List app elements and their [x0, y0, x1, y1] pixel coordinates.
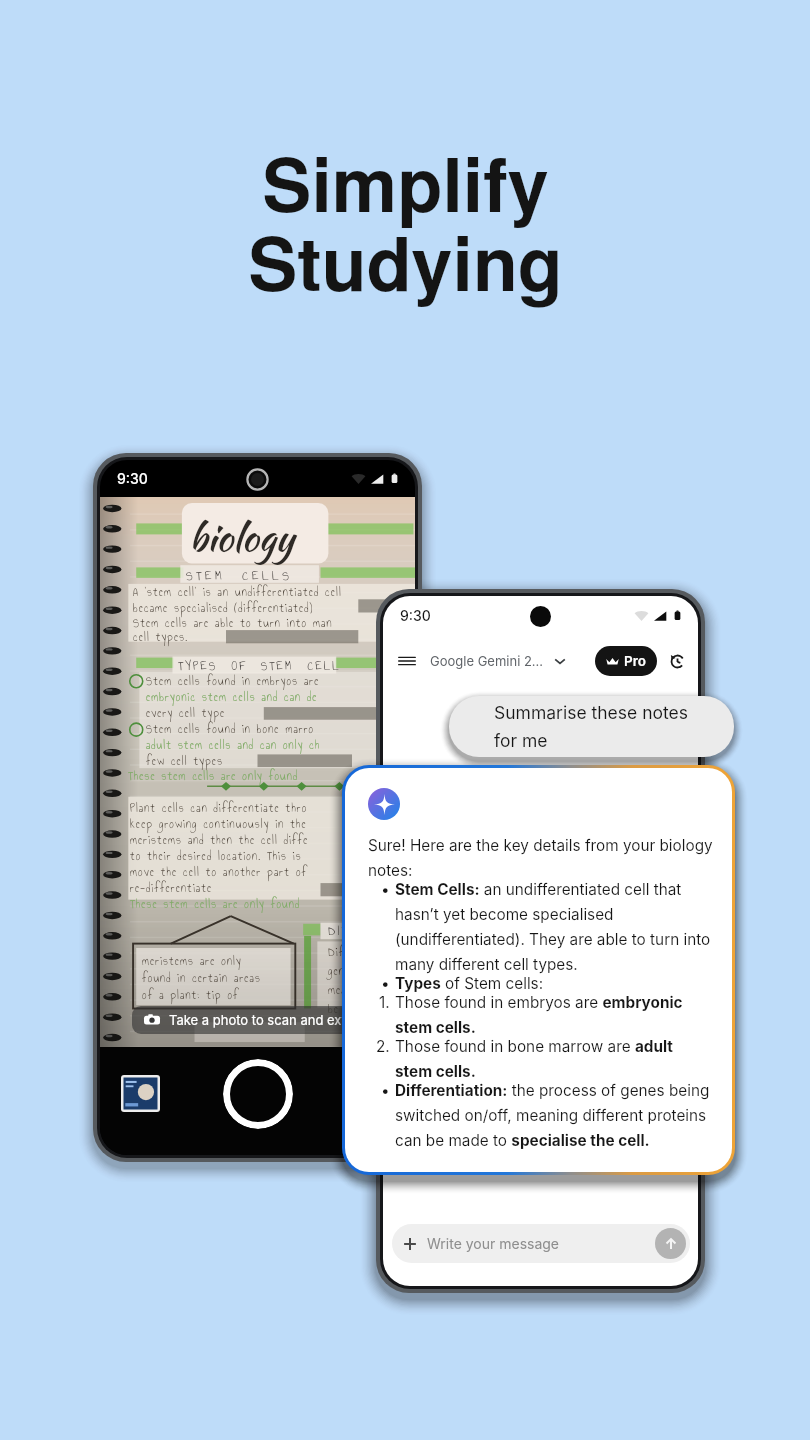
staticText: Differen [328, 943, 372, 961]
button[interactable]: Summarise these notes for me [449, 696, 734, 757]
staticText: Types of Stem cells: [395, 974, 544, 993]
button[interactable]: Send [655, 1228, 686, 1259]
staticText: few cell types [146, 752, 224, 770]
staticText: • [381, 1081, 390, 1100]
staticText: found in certain areas [142, 969, 261, 987]
button[interactable]: Menu [392, 646, 422, 676]
button[interactable]: Gallery [121, 1075, 160, 1112]
staticText: Those found in bone marrow are adult ste… [395, 1037, 713, 1081]
staticText: genes be [328, 962, 373, 980]
button[interactable]: History [663, 647, 691, 675]
staticText: cell types. [133, 628, 189, 646]
staticText: biology [189, 510, 294, 565]
button[interactable]: Google Gemini 2… [430, 649, 566, 673]
staticText: 1. [379, 993, 390, 1012]
staticText: move the cell to another part of [130, 863, 308, 881]
staticText: Plant cells can differentiate thro [130, 799, 308, 817]
staticText: TYPES OF STEM CELL [178, 656, 341, 675]
staticText: re-differentiate [130, 879, 213, 897]
staticText: Pro [624, 653, 646, 669]
staticText: meaning [328, 981, 368, 999]
staticText: to their desired location. This is [130, 847, 302, 865]
staticText: Google Gemini 2… [430, 653, 544, 669]
staticText: DIFFE [328, 921, 367, 940]
staticText: be mad [328, 1000, 364, 1018]
button[interactable]: Write your message [392, 1224, 690, 1263]
staticText: Stem Cells: an undifferentiated cell tha… [395, 880, 713, 974]
staticText: • [381, 880, 390, 899]
staticText: every cell type [146, 704, 226, 722]
staticText: became specialised (differentiated) [133, 599, 314, 617]
staticText: 9:30 [117, 470, 148, 487]
staticText: • [381, 974, 390, 993]
button[interactable]: Shutter [223, 1059, 293, 1129]
button[interactable]: Take a photo to scan and extract [132, 1006, 382, 1034]
staticText: Those found in embryos are embryonic ste… [395, 993, 713, 1037]
staticText: Stem cells found in bone marro [146, 720, 315, 738]
staticText: Take a photo to scan and extract [169, 1012, 370, 1028]
staticText: STEM CELLS [186, 566, 293, 586]
staticText: adult stem cells and can only ch [146, 736, 321, 754]
staticText: Stem cells found in embryos are [146, 672, 320, 690]
staticText: keep growing continuously in the [130, 815, 307, 833]
staticText: These stem cells are only found [128, 767, 299, 785]
staticText: Summarise these notes for me [494, 702, 698, 752]
button[interactable]: Pro [595, 646, 657, 676]
staticText: Write your message [427, 1235, 560, 1252]
staticText: Simplify Studying [248, 129, 563, 314]
staticText: 9:30 [400, 607, 431, 624]
staticText: meristems are only [142, 952, 242, 970]
staticText: Stem cells are able to turn into man [133, 614, 333, 632]
staticText: 2. [376, 1037, 390, 1056]
staticText: Differentiation: the process of genes be… [395, 1081, 713, 1150]
staticText: A 'stem cell' is an undifferentiated cel… [133, 583, 342, 601]
staticText: These stem cells are only found [130, 895, 301, 913]
staticText: embryonic stem cells and can de [146, 688, 318, 706]
staticText: meristems and then the cell diffe [130, 831, 309, 849]
staticText: of a plant: tip of [142, 986, 239, 1004]
staticText: Sure! Here are the key details from your… [368, 836, 713, 880]
